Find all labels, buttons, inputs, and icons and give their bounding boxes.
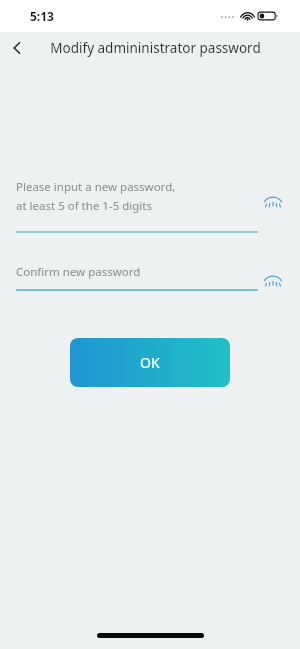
button[interactable]: Back xyxy=(0,32,34,64)
staticText: Modify admininistrator password xyxy=(50,39,261,57)
staticText: Please input a new password, xyxy=(16,179,176,195)
button[interactable]: Show password xyxy=(260,191,286,211)
button[interactable]: OK xyxy=(70,338,230,387)
button[interactable]: Show confirm password xyxy=(260,271,286,289)
staticText: 5:13 xyxy=(30,8,54,24)
staticText: OK xyxy=(140,353,160,372)
staticText: at least 5 of the 1-5 digits xyxy=(16,198,152,214)
staticText: Confirm new password xyxy=(16,264,141,280)
